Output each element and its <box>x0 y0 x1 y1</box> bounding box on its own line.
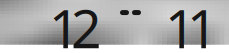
staticText: 11 <box>165 0 218 53</box>
staticText: 12 <box>49 0 102 53</box>
